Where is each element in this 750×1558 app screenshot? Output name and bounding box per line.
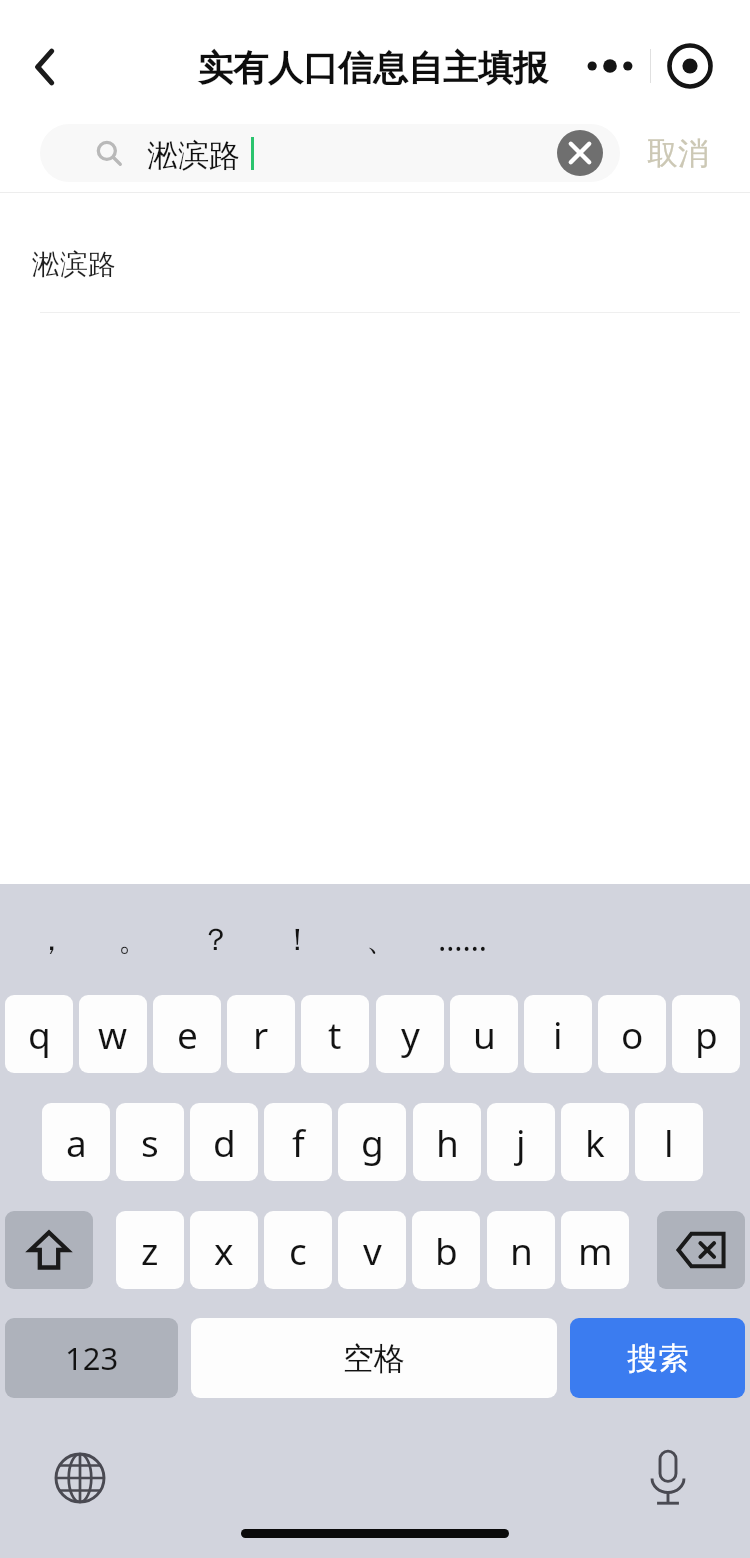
button[interactable]: Switch keyboard language: [44, 1442, 116, 1514]
button[interactable]: ……: [424, 910, 502, 968]
staticText: ！: [282, 920, 313, 959]
staticText: b: [435, 1225, 458, 1275]
button[interactable]: w: [79, 995, 147, 1073]
staticText: z: [141, 1225, 159, 1275]
button[interactable]: y: [376, 995, 444, 1073]
button[interactable]: m: [561, 1211, 629, 1289]
staticText: p: [695, 1009, 718, 1059]
staticText: ？: [200, 920, 231, 959]
staticText: i: [553, 1009, 563, 1059]
staticText: 空格: [343, 1339, 405, 1378]
staticText: 取消: [647, 134, 709, 173]
staticText: ，: [36, 920, 67, 959]
button[interactable]: 、: [342, 910, 420, 968]
button[interactable]: p: [672, 995, 740, 1073]
button[interactable]: v: [338, 1211, 406, 1289]
button[interactable]: u: [450, 995, 518, 1073]
staticText: a: [66, 1117, 87, 1167]
button[interactable]: More options: [570, 38, 650, 94]
button[interactable]: f: [264, 1103, 332, 1181]
button[interactable]: n: [487, 1211, 555, 1289]
button[interactable]: g: [338, 1103, 406, 1181]
staticText: u: [473, 1009, 496, 1059]
button[interactable]: j: [487, 1103, 555, 1181]
staticText: 淞滨路: [32, 247, 116, 282]
staticText: d: [213, 1117, 236, 1167]
button[interactable]: 淞滨路: [0, 216, 750, 312]
button[interactable]: k: [561, 1103, 629, 1181]
button[interactable]: t: [301, 995, 369, 1073]
staticText: q: [28, 1009, 51, 1059]
button[interactable]: x: [190, 1211, 258, 1289]
button[interactable]: h: [413, 1103, 481, 1181]
button[interactable]: i: [524, 995, 592, 1073]
staticText: r: [253, 1009, 269, 1059]
staticText: 淞滨路: [147, 136, 240, 175]
button[interactable]: a: [42, 1103, 110, 1181]
button[interactable]: ，: [12, 910, 90, 968]
button[interactable]: o: [598, 995, 666, 1073]
button[interactable]: Voice input: [632, 1442, 704, 1514]
staticText: e: [177, 1009, 198, 1059]
staticText: c: [289, 1225, 307, 1275]
staticText: 、: [366, 920, 397, 959]
button[interactable]: Clear text: [555, 128, 605, 178]
staticText: h: [436, 1117, 459, 1167]
staticText: g: [361, 1117, 384, 1167]
staticText: f: [292, 1117, 305, 1167]
staticText: t: [328, 1009, 342, 1059]
staticText: 实有人口信息自主填报: [198, 46, 548, 90]
button[interactable]: b: [412, 1211, 480, 1289]
button[interactable]: r: [227, 995, 295, 1073]
button[interactable]: ？: [176, 910, 254, 968]
staticText: y: [401, 1009, 420, 1059]
button[interactable]: 取消: [626, 124, 730, 182]
button[interactable]: c: [264, 1211, 332, 1289]
button[interactable]: 空格: [191, 1318, 557, 1398]
button[interactable]: 搜索: [570, 1318, 745, 1398]
staticText: j: [516, 1117, 526, 1167]
staticText: k: [585, 1117, 605, 1167]
button[interactable]: z: [116, 1211, 184, 1289]
button[interactable]: Backspace: [657, 1211, 745, 1289]
button[interactable]: ！: [258, 910, 336, 968]
button[interactable]: Shift: [5, 1211, 93, 1289]
button[interactable]: l: [635, 1103, 703, 1181]
staticText: s: [141, 1117, 159, 1167]
staticText: 搜索: [627, 1339, 689, 1378]
button[interactable]: 123: [5, 1318, 178, 1398]
button[interactable]: Back: [14, 36, 76, 98]
button[interactable]: q: [5, 995, 73, 1073]
staticText: x: [214, 1225, 234, 1275]
staticText: n: [510, 1225, 533, 1275]
button[interactable]: e: [153, 995, 221, 1073]
button[interactable]: Close mini program: [650, 38, 730, 94]
staticText: o: [621, 1009, 644, 1059]
button[interactable]: 淞滨路: [40, 124, 620, 182]
button[interactable]: 。: [94, 910, 172, 968]
staticText: 。: [118, 920, 149, 959]
button[interactable]: s: [116, 1103, 184, 1181]
button[interactable]: d: [190, 1103, 258, 1181]
staticText: w: [98, 1009, 128, 1059]
staticText: ……: [438, 918, 488, 960]
staticText: 123: [65, 1337, 119, 1379]
staticText: l: [664, 1117, 674, 1167]
staticText: m: [578, 1225, 613, 1275]
staticText: v: [363, 1225, 382, 1275]
